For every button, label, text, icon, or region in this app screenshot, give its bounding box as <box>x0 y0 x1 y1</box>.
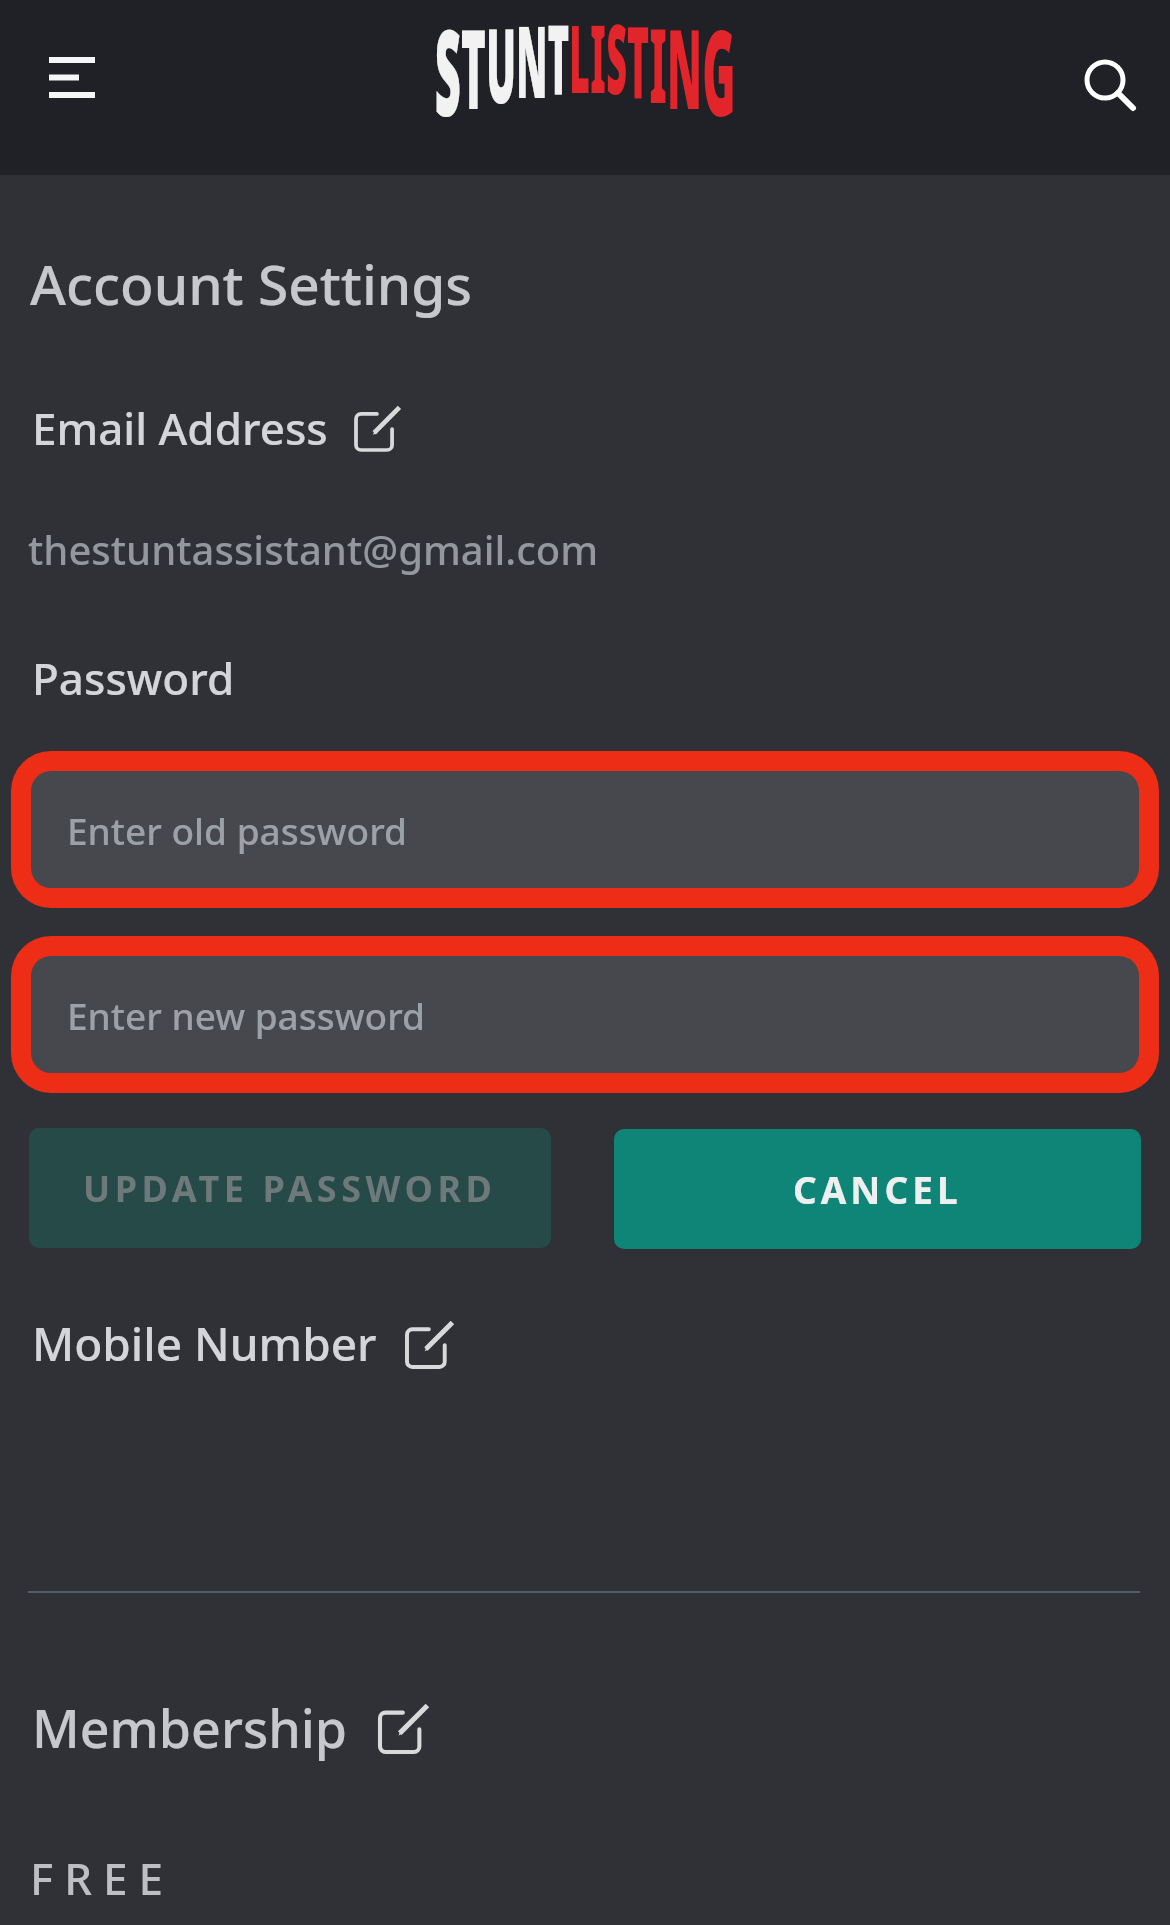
button[interactable]: Email Address <box>32 398 400 458</box>
staticText: S <box>606 0 627 122</box>
staticText: Password <box>32 648 235 708</box>
staticText: T <box>548 0 569 122</box>
staticText: Membership <box>32 1692 348 1763</box>
staticText: U <box>486 0 516 133</box>
staticText: I <box>590 0 606 120</box>
button[interactable]: Enter new password <box>31 956 1139 1073</box>
staticText: CANCEL <box>793 1164 962 1214</box>
staticText: Account Settings <box>30 246 473 321</box>
staticText: N <box>516 0 548 127</box>
staticText: S <box>435 0 461 151</box>
button[interactable] <box>1075 50 1145 120</box>
button[interactable] <box>35 43 109 111</box>
button[interactable]: Mobile Number <box>32 1312 453 1375</box>
button[interactable]: CANCEL <box>614 1129 1141 1249</box>
staticText: T <box>627 0 649 127</box>
staticText: N <box>667 0 702 141</box>
staticText: FREE <box>30 1848 175 1908</box>
staticText: G <box>702 0 736 151</box>
staticText: Enter old password <box>67 805 408 855</box>
staticText: L <box>569 0 590 120</box>
staticText: UPDATE PASSWORD <box>83 1164 497 1213</box>
staticText: Enter new password <box>67 990 426 1040</box>
button[interactable]: Membership <box>32 1692 428 1763</box>
button[interactable]: UPDATE PASSWORD <box>29 1128 551 1248</box>
staticText: I <box>649 0 667 133</box>
button[interactable]: S <box>189 0 982 162</box>
staticText: Mobile Number <box>32 1312 377 1375</box>
staticText: Email Address <box>32 398 328 458</box>
staticText: T <box>461 0 486 141</box>
button[interactable]: Enter old password <box>31 771 1139 888</box>
staticText: thestuntassistant@gmail.com <box>28 522 599 576</box>
